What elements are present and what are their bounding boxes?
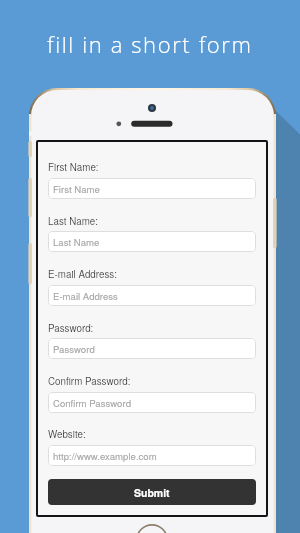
staticText: First Name [53, 182, 100, 196]
staticText: E-mail Address: [48, 267, 117, 281]
button[interactable]: Confirm Password [48, 392, 256, 413]
staticText: Confirm Password: [48, 374, 131, 388]
button[interactable]: Submit [48, 479, 256, 505]
staticText: Confirm Password [53, 396, 131, 410]
staticText: fill in a short form [47, 29, 253, 59]
staticText: E-mail Address [53, 289, 118, 303]
staticText: First Name: [48, 160, 99, 174]
staticText: Last Name [53, 235, 100, 249]
staticText: Password: [48, 321, 94, 335]
staticText: Submit [134, 485, 170, 500]
button[interactable]: E-mail Address [48, 285, 256, 306]
button[interactable]: Password [48, 338, 256, 359]
staticText: Last Name: [48, 214, 98, 228]
staticText: Password [53, 342, 95, 356]
staticText: http://www.example.com [53, 449, 157, 463]
staticText: Website: [48, 427, 86, 441]
button[interactable]: http://www.example.com [48, 445, 256, 466]
button[interactable]: First Name [48, 178, 256, 199]
button[interactable]: Last Name [48, 231, 256, 252]
